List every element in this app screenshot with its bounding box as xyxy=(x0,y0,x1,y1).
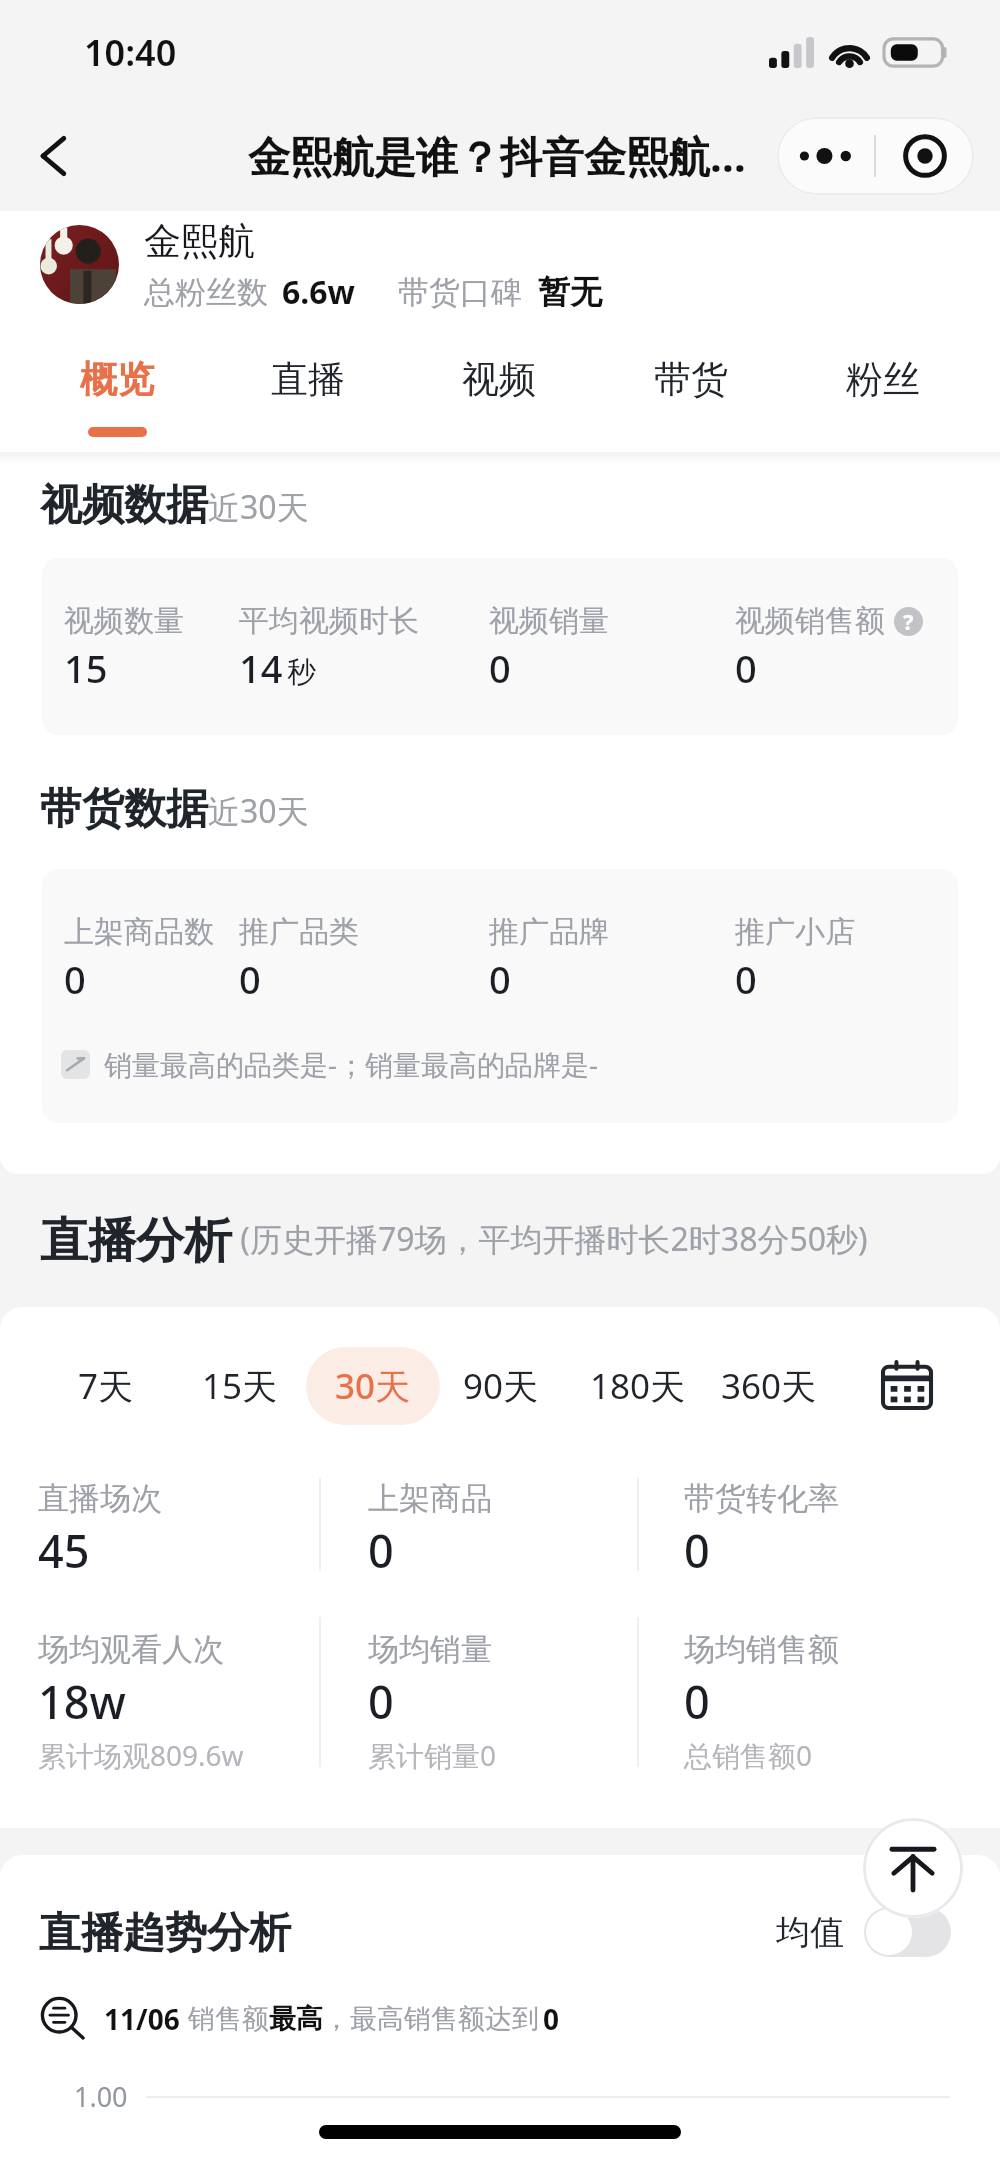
button[interactable]: Toggle average line xyxy=(864,1907,951,1957)
staticText: 场均销售额 xyxy=(684,1630,839,1669)
staticText: 推广品类 xyxy=(239,913,359,951)
button[interactable]: 粉丝 xyxy=(787,340,979,452)
staticText: (历史开播79场，平均开播时长2时38分50秒) xyxy=(232,1217,868,1261)
staticText: 360天 xyxy=(721,1362,817,1410)
staticText: 累计场观809.6w xyxy=(38,1736,244,1774)
staticText: 14 xyxy=(239,642,283,694)
button[interactable]: Close mini program xyxy=(876,117,974,195)
staticText: 7天 xyxy=(78,1362,134,1410)
staticText: 最高 xyxy=(269,2002,323,2036)
staticText: 0 xyxy=(735,953,757,1005)
staticText: 90天 xyxy=(463,1362,539,1410)
button[interactable]: Help xyxy=(894,607,923,636)
staticText: 上架商品数 xyxy=(64,913,214,951)
staticText: 销量最高的品类是-；销量最高的品牌是- xyxy=(104,1045,599,1083)
staticText: 总销售额0 xyxy=(684,1736,813,1774)
staticText: 180天 xyxy=(590,1362,686,1410)
button[interactable]: Scroll to top xyxy=(863,1818,963,1918)
staticText: 0 xyxy=(543,2000,560,2038)
staticText: 0 xyxy=(489,953,511,1005)
staticText: 带货 xyxy=(654,356,728,403)
staticText: 0 xyxy=(239,953,261,1005)
staticText: 30天 xyxy=(335,1362,411,1410)
staticText: 视频数据 xyxy=(40,479,208,532)
staticText: 0 xyxy=(489,642,511,694)
staticText: 带货数据 xyxy=(40,783,208,836)
staticText: 场均观看人次 xyxy=(38,1630,224,1669)
staticText: 0 xyxy=(368,1671,394,1732)
button[interactable]: Back xyxy=(18,119,92,193)
button[interactable]: 15天 xyxy=(165,1342,315,1430)
button[interactable]: 30天 xyxy=(298,1342,448,1430)
staticText: 均值 xyxy=(776,1911,844,1954)
staticText: 直播 xyxy=(271,356,345,403)
staticText: 视频 xyxy=(462,356,536,403)
button[interactable]: Pick date range xyxy=(868,1347,946,1425)
staticText: 15天 xyxy=(202,1362,278,1410)
staticText: 推广品牌 xyxy=(489,913,609,951)
staticText: 18w xyxy=(38,1671,126,1732)
staticText: 0 xyxy=(684,1671,710,1732)
staticText: 视频销售额 xyxy=(735,602,885,640)
staticText: 15 xyxy=(64,642,108,694)
staticText: 场均销量 xyxy=(368,1630,492,1669)
staticText: 直播分析 xyxy=(40,1211,232,1271)
button[interactable]: More options xyxy=(777,117,874,195)
staticText: 10:40 xyxy=(84,28,177,77)
button[interactable]: 7天 xyxy=(31,1342,181,1430)
button[interactable]: 视频 xyxy=(403,340,595,452)
staticText: 带货转化率 xyxy=(684,1479,839,1518)
button[interactable]: 直播 xyxy=(212,340,403,452)
staticText: 总粉丝数 xyxy=(144,273,268,312)
staticText: 视频数量 xyxy=(64,602,184,640)
staticText: 暂无 xyxy=(538,272,602,312)
staticText: 近30天 xyxy=(208,789,309,833)
staticText: 视频销量 xyxy=(489,602,609,640)
staticText: 1.00 xyxy=(74,2078,128,2115)
staticText: 平均视频时长 xyxy=(239,602,419,640)
staticText: 推广小店 xyxy=(735,913,855,951)
staticText: 最高销售额达到 xyxy=(350,2002,539,2036)
staticText: 金熙航 xyxy=(144,218,255,265)
staticText: 金熙航是谁？抖音金熙航… xyxy=(248,127,746,184)
staticText: 上架商品 xyxy=(368,1479,492,1518)
staticText: 0 xyxy=(368,1520,394,1581)
staticText: ， xyxy=(323,2002,350,2036)
staticText: 45 xyxy=(38,1520,90,1581)
staticText: ? xyxy=(903,607,914,635)
button[interactable]: 带货 xyxy=(595,340,787,452)
staticText: 0 xyxy=(684,1520,710,1581)
staticText: 直播场次 xyxy=(38,1479,162,1518)
button[interactable]: 90天 xyxy=(426,1342,576,1430)
staticText: 0 xyxy=(735,642,757,694)
staticText: 概览 xyxy=(80,356,154,403)
button[interactable]: 180天 xyxy=(563,1342,713,1430)
staticText: 带货口碑 xyxy=(398,273,522,312)
staticText: 0 xyxy=(64,953,86,1005)
button[interactable]: 360天 xyxy=(694,1342,844,1430)
staticText: 累计销量0 xyxy=(368,1736,497,1774)
staticText: 粉丝 xyxy=(846,356,920,403)
staticText: 近30天 xyxy=(208,485,309,529)
staticText: 销售额 xyxy=(188,2002,269,2036)
staticText: 6.6w xyxy=(282,270,355,314)
staticText: 秒 xyxy=(287,654,316,691)
staticText: 11/06 xyxy=(104,2000,180,2038)
staticText: 直播趋势分析 xyxy=(39,1907,291,1960)
button[interactable]: 概览 xyxy=(21,340,212,452)
